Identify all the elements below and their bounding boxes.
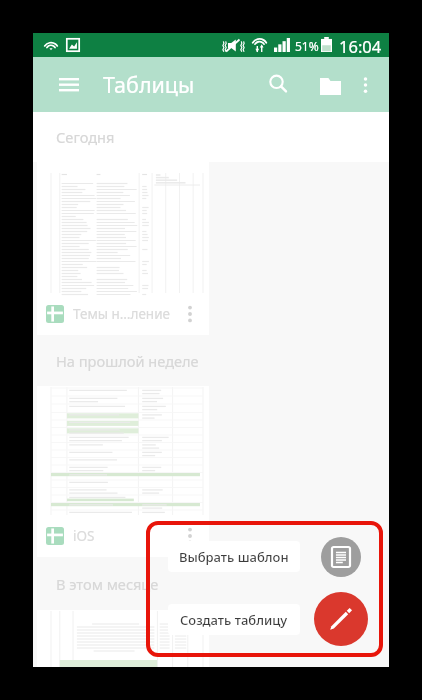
staticText: Темы н…ление	[73, 305, 170, 323]
button[interactable]: Выбрать шаблон	[168, 541, 300, 572]
staticText: 16:04	[339, 35, 382, 57]
staticText: На прошлой неделе	[56, 351, 199, 371]
staticText: 51%	[295, 38, 319, 54]
button[interactable]: Создать таблицу	[168, 604, 300, 635]
staticText: iOS	[73, 527, 95, 545]
button[interactable]: More options	[344, 64, 386, 106]
button[interactable]: More options	[179, 525, 201, 547]
staticText: Таблицы	[103, 70, 195, 99]
button[interactable]: Open navigation drawer	[48, 69, 90, 101]
staticText: Создать таблицу	[180, 611, 288, 629]
button[interactable]: More options	[179, 303, 201, 325]
staticText: Сегодня	[56, 127, 115, 147]
button[interactable]: More options	[37, 610, 209, 667]
staticText: Выбрать шаблон	[179, 548, 289, 566]
button[interactable]: Темы н…ление	[37, 162, 209, 335]
button[interactable]: Folders	[309, 65, 351, 107]
button[interactable]: Choose template	[321, 537, 361, 577]
button[interactable]: Search	[258, 64, 300, 106]
staticText: В этом месяце	[56, 574, 159, 594]
button[interactable]: Create new spreadsheet	[314, 592, 368, 646]
button[interactable]: iOS	[37, 386, 209, 557]
